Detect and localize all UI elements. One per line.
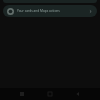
button[interactable]: Back (72, 88, 84, 100)
button[interactable]: Cards (3, 5, 97, 17)
other: Open (88, 9, 93, 14)
button[interactable]: Recents (16, 88, 28, 100)
staticText: Your cards and Maps actions (17, 9, 86, 13)
button[interactable]: Home (44, 88, 56, 100)
other: Cards (7, 8, 14, 15)
